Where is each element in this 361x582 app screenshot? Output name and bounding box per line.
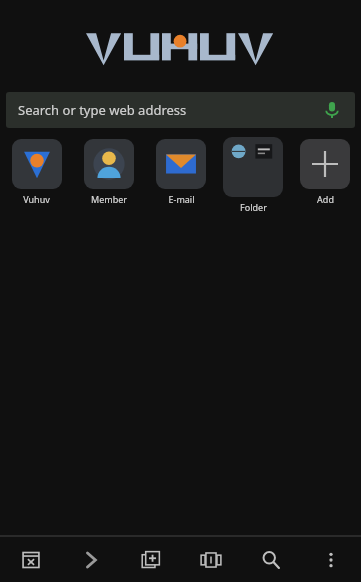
button[interactable]: Member: [73, 137, 145, 217]
button[interactable]: Folder: [217, 137, 289, 217]
staticText: Member: [91, 193, 127, 205]
button[interactable]: Search or type web address: [6, 92, 355, 128]
button[interactable]: Forward: [61, 537, 121, 582]
staticText: E-mail: [168, 193, 195, 205]
button[interactable]: Vuhuv: [0, 137, 73, 217]
button[interactable]: Add: [289, 137, 361, 217]
button[interactable]: Close tab: [0, 537, 61, 582]
button[interactable]: Voice search: [321, 99, 343, 121]
button[interactable]: New tab: [121, 537, 181, 582]
button[interactable]: Search: [241, 537, 301, 582]
button[interactable]: E-mail: [145, 137, 217, 217]
staticText: Add: [317, 193, 334, 205]
button[interactable]: More options: [301, 537, 361, 582]
staticText: Folder: [240, 201, 267, 213]
button[interactable]: Tabs: [181, 537, 241, 582]
staticText: Vuhuv: [23, 193, 50, 205]
staticText: Search or type web address: [18, 101, 187, 119]
